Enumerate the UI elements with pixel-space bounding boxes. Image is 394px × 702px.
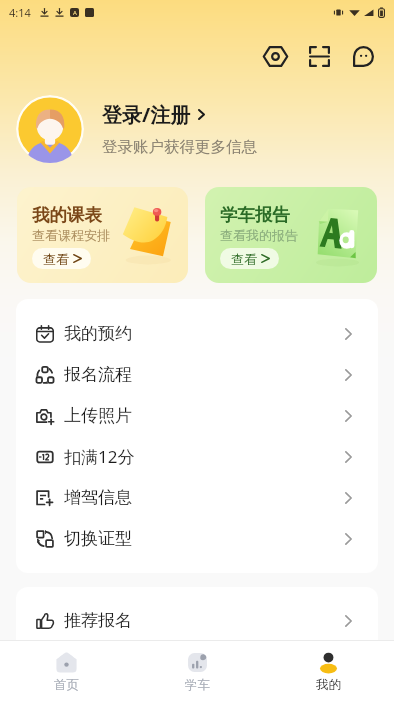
button[interactable]: 登录/注册 — [0, 93, 394, 165]
staticText: A — [73, 9, 77, 17]
button[interactable]: Service — [253, 34, 297, 78]
staticText: 我的课表 — [32, 204, 102, 226]
button[interactable]: 学车报告 — [205, 187, 377, 283]
staticText: 学车报告 — [220, 204, 290, 226]
button[interactable]: 查看 — [220, 248, 279, 269]
staticText: 查看 — [231, 251, 257, 267]
staticText: 首页 — [54, 677, 79, 693]
button[interactable]: Messages — [341, 34, 385, 78]
staticText: 4:14 — [9, 5, 31, 20]
staticText: 登录/注册 — [102, 101, 191, 128]
button[interactable]: Scan — [297, 34, 341, 78]
staticText: 上传照片 — [64, 405, 132, 426]
staticText: 推荐报名 — [64, 610, 132, 631]
staticText: 增驾信息 — [64, 487, 132, 508]
staticText: 查看我的报告 — [220, 227, 298, 243]
button[interactable]: 报名流程 — [16, 354, 378, 395]
button[interactable]: 扣满12分 — [16, 436, 378, 477]
staticText: 我的 — [316, 677, 341, 693]
staticText: 学车 — [185, 677, 210, 693]
button[interactable]: 我的课表 — [17, 187, 188, 283]
button[interactable]: 增驾信息 — [16, 477, 378, 518]
button[interactable]: 学车 — [132, 641, 263, 702]
staticText: 查看 — [43, 251, 69, 267]
staticText: 报名流程 — [64, 364, 132, 385]
button[interactable]: 首页 — [0, 641, 132, 702]
button[interactable]: 推荐报名 — [16, 600, 378, 641]
button[interactable]: 切换证型 — [16, 518, 378, 559]
button[interactable]: 我的 — [263, 641, 394, 702]
button[interactable]: 查看 — [32, 248, 91, 269]
staticText: 切换证型 — [64, 528, 132, 549]
staticText: 我的预约 — [64, 323, 132, 344]
staticText: 登录账户获得更多信息 — [102, 137, 257, 157]
staticText: 扣满12分 — [64, 445, 135, 468]
button[interactable]: 我的预约 — [16, 313, 378, 354]
staticText: 查看课程安排 — [32, 227, 110, 243]
button[interactable]: 上传照片 — [16, 395, 378, 436]
